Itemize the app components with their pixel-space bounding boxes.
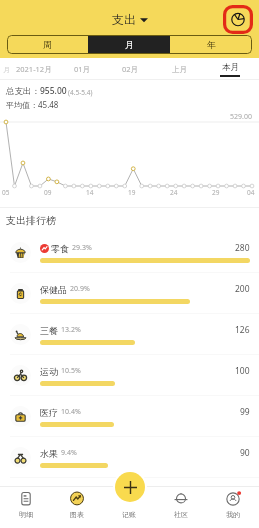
staticText: 上月 <box>172 65 187 74</box>
button[interactable]: 01月 <box>58 58 106 80</box>
staticText: 10.4% <box>61 407 81 417</box>
staticText: 支出排行榜 <box>6 214 56 227</box>
staticText: 529.00 <box>230 112 252 122</box>
staticText: 10.5% <box>61 366 81 376</box>
button[interactable]: Add record <box>115 472 145 502</box>
button[interactable]: 上月 <box>155 58 204 80</box>
button[interactable]: 水果 <box>0 437 259 478</box>
staticText: (4.5-5.4) <box>68 88 93 97</box>
staticText: 13.2% <box>61 325 81 335</box>
staticText: 280 <box>235 242 250 254</box>
button[interactable]: 2021-12月 <box>10 58 58 80</box>
staticText: 01月 <box>74 64 91 74</box>
staticText: 保健品 <box>40 284 67 295</box>
staticText: 20.9% <box>70 284 90 294</box>
button[interactable]: 保健品 <box>0 273 259 314</box>
button[interactable]: Pie chart statistics <box>223 5 253 34</box>
staticText: 09 <box>44 188 52 197</box>
staticText: 29.3% <box>72 243 92 253</box>
button[interactable]: 三餐 <box>0 314 259 355</box>
staticText: 200 <box>235 283 250 295</box>
staticText: 记账 <box>122 510 136 519</box>
staticText: 图表 <box>70 510 84 519</box>
button[interactable]: 记账 <box>103 487 155 528</box>
button[interactable]: 社区 <box>155 487 207 528</box>
button[interactable]: 周 <box>7 35 88 54</box>
button[interactable]: 本月 <box>204 58 255 80</box>
staticText: 医疗 <box>40 407 58 418</box>
button[interactable]: 明细 <box>0 487 51 528</box>
staticText: 100 <box>235 365 250 377</box>
staticText: 年 <box>207 39 216 50</box>
button[interactable]: 支出 <box>112 12 148 27</box>
staticText: 明细 <box>19 510 33 519</box>
staticText: 三餐 <box>40 325 58 336</box>
staticText: 运动 <box>40 366 58 377</box>
button[interactable]: 年 <box>170 35 252 54</box>
staticText: 本月 <box>222 62 239 73</box>
staticText: 90 <box>240 447 250 459</box>
staticText: 19 <box>128 188 136 197</box>
staticText: 月 <box>3 65 10 74</box>
staticText: 9.4% <box>61 448 77 458</box>
button[interactable]: 医疗 <box>0 396 259 437</box>
staticText: 水果 <box>40 448 58 459</box>
staticText: 99 <box>240 406 250 418</box>
staticText: 社区 <box>174 510 188 519</box>
staticText: 126 <box>235 324 250 336</box>
staticText: 零食 <box>51 243 69 254</box>
button[interactable]: 图表 <box>51 487 103 528</box>
staticText: 2021-12月 <box>16 64 52 74</box>
button[interactable]: 运动 <box>0 355 259 396</box>
staticText: 14 <box>86 188 94 197</box>
staticText: 总支出：955.00 <box>6 85 67 97</box>
staticText: 我的 <box>226 510 240 519</box>
button[interactable]: 月 <box>88 35 170 54</box>
staticText: 05 <box>2 188 10 197</box>
staticText: 02月 <box>122 64 139 74</box>
staticText: 24 <box>170 188 178 197</box>
staticText: 04 <box>247 188 255 197</box>
button[interactable]: 我的 <box>207 487 259 528</box>
button[interactable]: 零食 <box>0 232 259 273</box>
staticText: 29 <box>212 188 220 197</box>
staticText: 月 <box>125 39 134 50</box>
staticText: 周 <box>43 39 52 50</box>
staticText: 平均值：45.48 <box>6 99 59 110</box>
staticText: 支出 <box>112 12 136 27</box>
button[interactable]: 02月 <box>106 58 155 80</box>
